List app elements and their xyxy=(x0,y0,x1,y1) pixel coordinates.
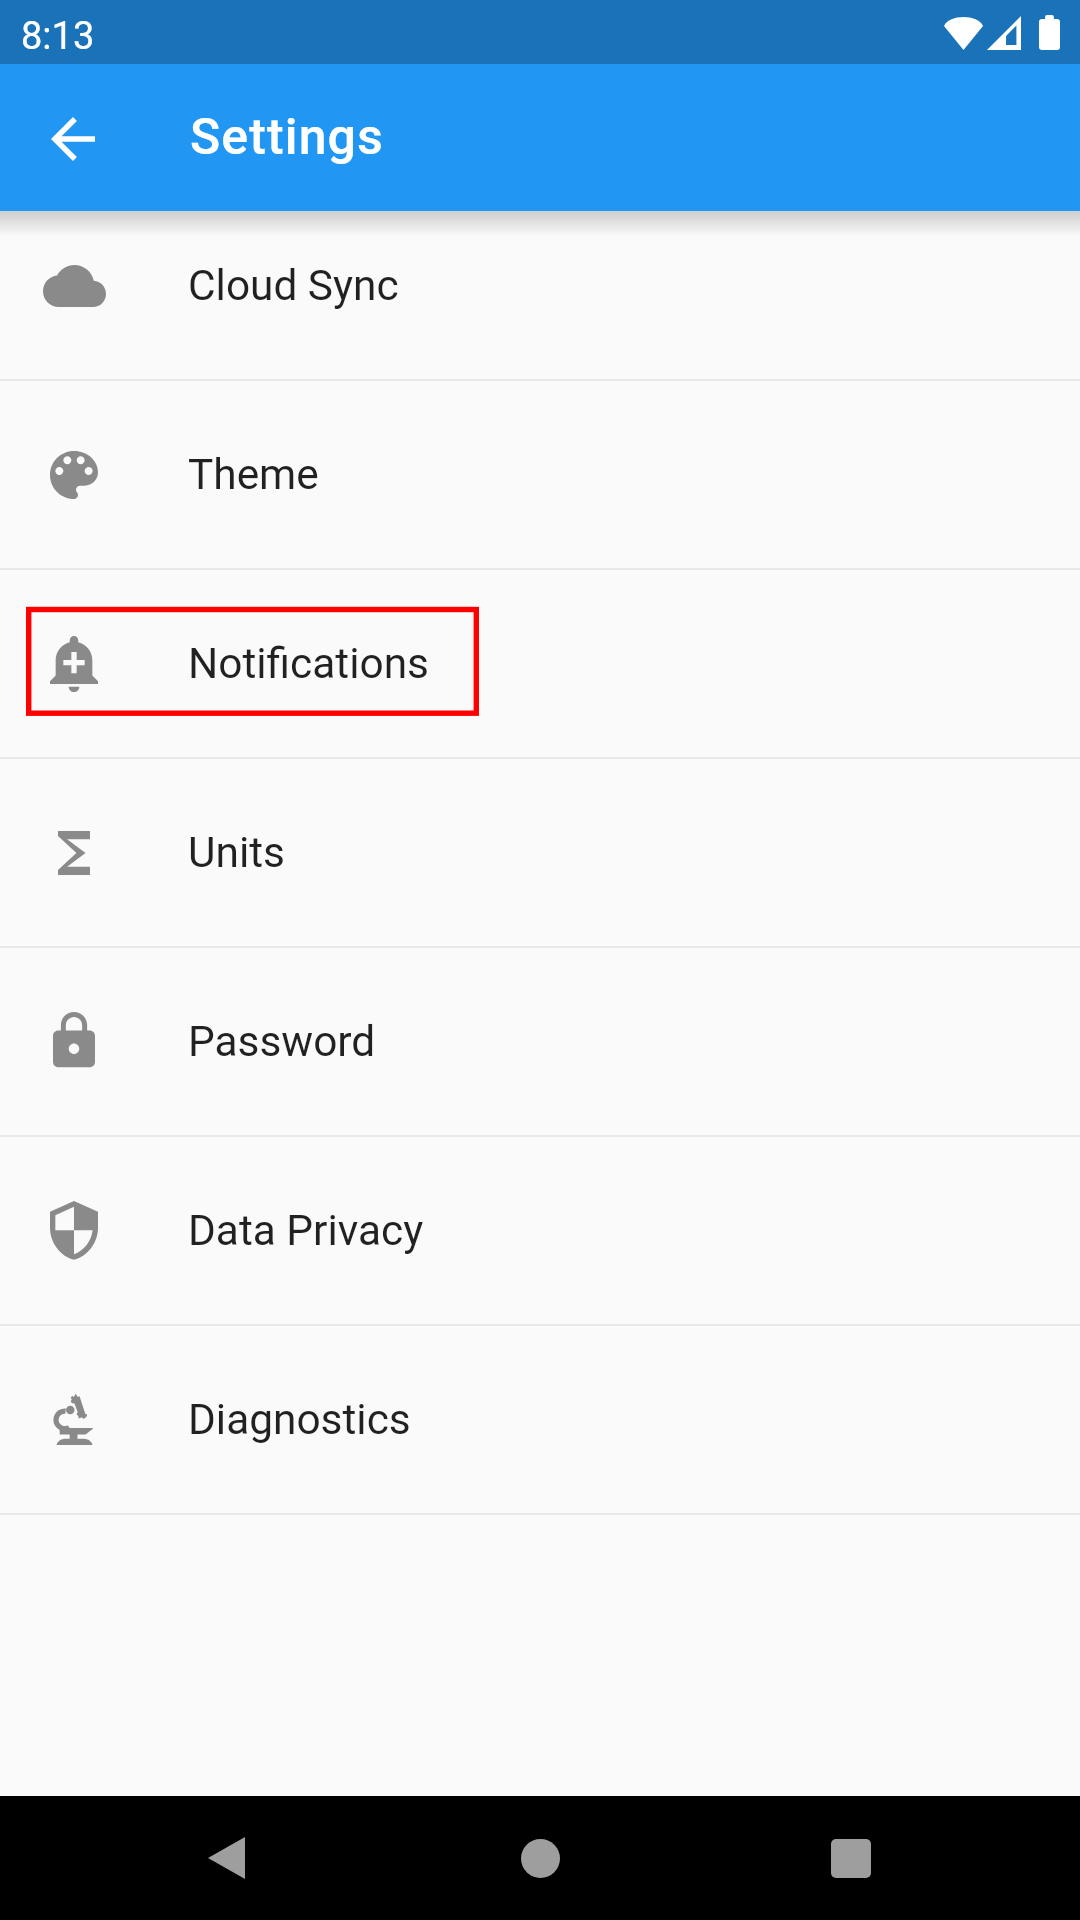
button[interactable]: Home xyxy=(480,1796,600,1920)
staticText: 8:13 xyxy=(21,14,95,59)
button[interactable]: Theme xyxy=(0,381,1080,568)
button[interactable]: Cloud Sync xyxy=(0,211,1080,379)
button[interactable]: Navigate up xyxy=(29,95,117,183)
button[interactable]: Password xyxy=(0,948,1080,1135)
staticText: Cloud Sync xyxy=(188,261,399,311)
button[interactable]: Notifications xyxy=(0,570,1080,757)
staticText: Units xyxy=(188,828,285,878)
button[interactable]: Recent apps xyxy=(791,1796,911,1920)
button[interactable]: Data Privacy xyxy=(0,1137,1080,1324)
button[interactable]: Back xyxy=(166,1796,286,1920)
button[interactable]: Units xyxy=(0,759,1080,946)
staticText: Diagnostics xyxy=(188,1395,411,1445)
button[interactable]: Diagnostics xyxy=(0,1326,1080,1513)
staticText: Password xyxy=(188,1017,376,1067)
staticText: Data Privacy xyxy=(188,1206,424,1256)
staticText: Notifications xyxy=(188,639,429,689)
staticText: Theme xyxy=(188,450,319,500)
staticText: Settings xyxy=(190,108,384,167)
